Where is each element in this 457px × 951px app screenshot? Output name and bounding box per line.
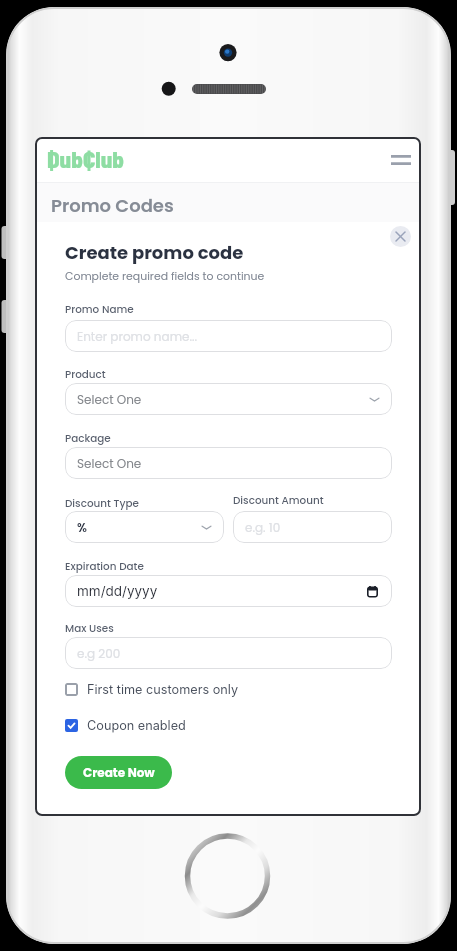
staticText: DubClub bbox=[47, 145, 125, 173]
staticText: Product bbox=[65, 367, 106, 382]
button[interactable]: Select One bbox=[65, 447, 392, 479]
button[interactable]: Menu bbox=[386, 147, 416, 173]
staticText: Discount Amount bbox=[233, 493, 324, 508]
button[interactable]: Select One bbox=[65, 383, 392, 415]
button[interactable]: First time customers only bbox=[65, 681, 239, 697]
staticText: Coupon enabled bbox=[87, 718, 186, 733]
button[interactable]: Coupon enabled bbox=[65, 717, 186, 733]
button[interactable]: e.g 200 bbox=[65, 637, 392, 669]
staticText: Package bbox=[65, 431, 111, 446]
staticText: mm/dd/yyyy bbox=[77, 583, 158, 599]
staticText: First time customers only bbox=[87, 682, 239, 697]
button[interactable]: Create Now bbox=[65, 756, 172, 789]
button[interactable]: Enter promo name... bbox=[65, 320, 392, 352]
staticText: Create Now bbox=[83, 764, 155, 781]
staticText: Promo Codes bbox=[51, 193, 174, 218]
button[interactable]: e.g. 10 bbox=[233, 511, 392, 543]
staticText: % bbox=[77, 519, 87, 536]
button[interactable]: % bbox=[65, 511, 224, 543]
button[interactable]: Close bbox=[390, 226, 411, 247]
staticText: Complete required fields to continue bbox=[65, 269, 265, 284]
staticText: Expiration Date bbox=[65, 559, 144, 574]
staticText: Select One bbox=[77, 455, 142, 472]
staticText: Promo Name bbox=[65, 302, 134, 317]
button[interactable]: mm/dd/yyyy bbox=[65, 575, 392, 607]
staticText: Create promo code bbox=[65, 240, 244, 265]
staticText: Enter promo name... bbox=[77, 328, 197, 345]
staticText: Select One bbox=[77, 391, 142, 408]
staticText: Discount Type bbox=[65, 496, 139, 511]
staticText: e.g. 10 bbox=[245, 519, 281, 536]
button[interactable]: DubClub bbox=[47, 145, 131, 175]
staticText: Max Uses bbox=[65, 621, 114, 636]
staticText: e.g 200 bbox=[77, 645, 121, 662]
